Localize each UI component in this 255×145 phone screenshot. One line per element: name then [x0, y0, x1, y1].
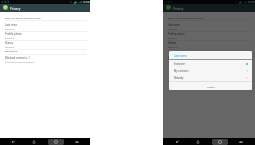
staticText: Privacy	[10, 7, 21, 11]
staticText: Profile photo	[168, 32, 185, 36]
button[interactable]: Nobody	[169, 74, 252, 81]
staticText: Blocked contacts: 1	[168, 56, 193, 60]
staticText: Nobody	[174, 76, 184, 79]
staticText: List contacts that are blocked	[168, 61, 197, 64]
staticText: MESSAGING	[168, 50, 181, 53]
button[interactable]: Blocked contacts: 1	[0, 56, 90, 65]
staticText: Privacy	[173, 7, 184, 11]
button[interactable]: Recent apps	[48, 138, 64, 145]
staticText: Last seen	[5, 23, 18, 27]
staticText: Cancel	[207, 85, 215, 88]
staticText: Everyone	[5, 37, 15, 40]
button[interactable]: Status	[0, 41, 90, 50]
staticText: Everyone	[168, 46, 178, 49]
staticText: Status	[5, 41, 14, 45]
staticText: My contacts	[174, 69, 189, 72]
staticText: Last seen	[168, 23, 181, 27]
button[interactable]: Status	[163, 41, 255, 50]
button[interactable]: Cancel	[169, 82, 252, 90]
staticText: List contacts that are blocked	[5, 61, 34, 64]
button[interactable]: Screenshot	[233, 138, 249, 145]
button[interactable]: Blocked contacts: 1	[163, 56, 255, 65]
staticText: Profile photo	[5, 32, 22, 36]
staticText: Everyone	[168, 28, 178, 31]
staticText: Everyone	[174, 62, 186, 65]
staticText: MESSAGING	[5, 50, 18, 53]
button[interactable]: Last seen	[163, 23, 255, 32]
button[interactable]: Profile photo	[0, 32, 90, 41]
staticText: Blocked contacts: 1	[5, 56, 30, 60]
button[interactable]: Recent apps	[212, 138, 228, 145]
staticText: Status	[168, 41, 177, 45]
button[interactable]: Home	[26, 138, 42, 145]
staticText: WHO CAN SEE MY PERSONAL INFO	[168, 17, 204, 20]
staticText: Everyone	[5, 28, 15, 31]
button[interactable]: Back	[5, 138, 21, 145]
staticText: WHO CAN SEE MY PERSONAL INFO	[5, 17, 41, 20]
button[interactable]: Last seen	[0, 23, 90, 32]
button[interactable]: Screenshot	[69, 138, 85, 145]
button[interactable]: Everyone	[169, 60, 252, 67]
staticText: Everyone	[168, 37, 178, 40]
button[interactable]: Back	[169, 138, 185, 145]
button[interactable]: Home	[190, 138, 206, 145]
button[interactable]: My contacts	[169, 67, 252, 74]
button[interactable]: Profile photo	[163, 32, 255, 41]
staticText: Everyone	[5, 46, 15, 49]
staticText: Last seen	[174, 54, 187, 58]
